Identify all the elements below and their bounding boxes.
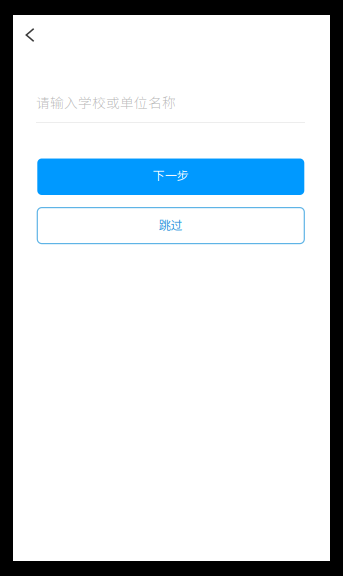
button[interactable]: Back	[14, 19, 46, 51]
staticText: 跳过	[159, 216, 183, 233]
button[interactable]: 请输入学校或单位名称	[36, 95, 305, 123]
button[interactable]: 跳过	[37, 208, 304, 244]
button[interactable]: 下一步	[37, 158, 304, 195]
staticText: 下一步	[153, 166, 189, 183]
staticText: 请输入学校或单位名称	[36, 92, 176, 112]
